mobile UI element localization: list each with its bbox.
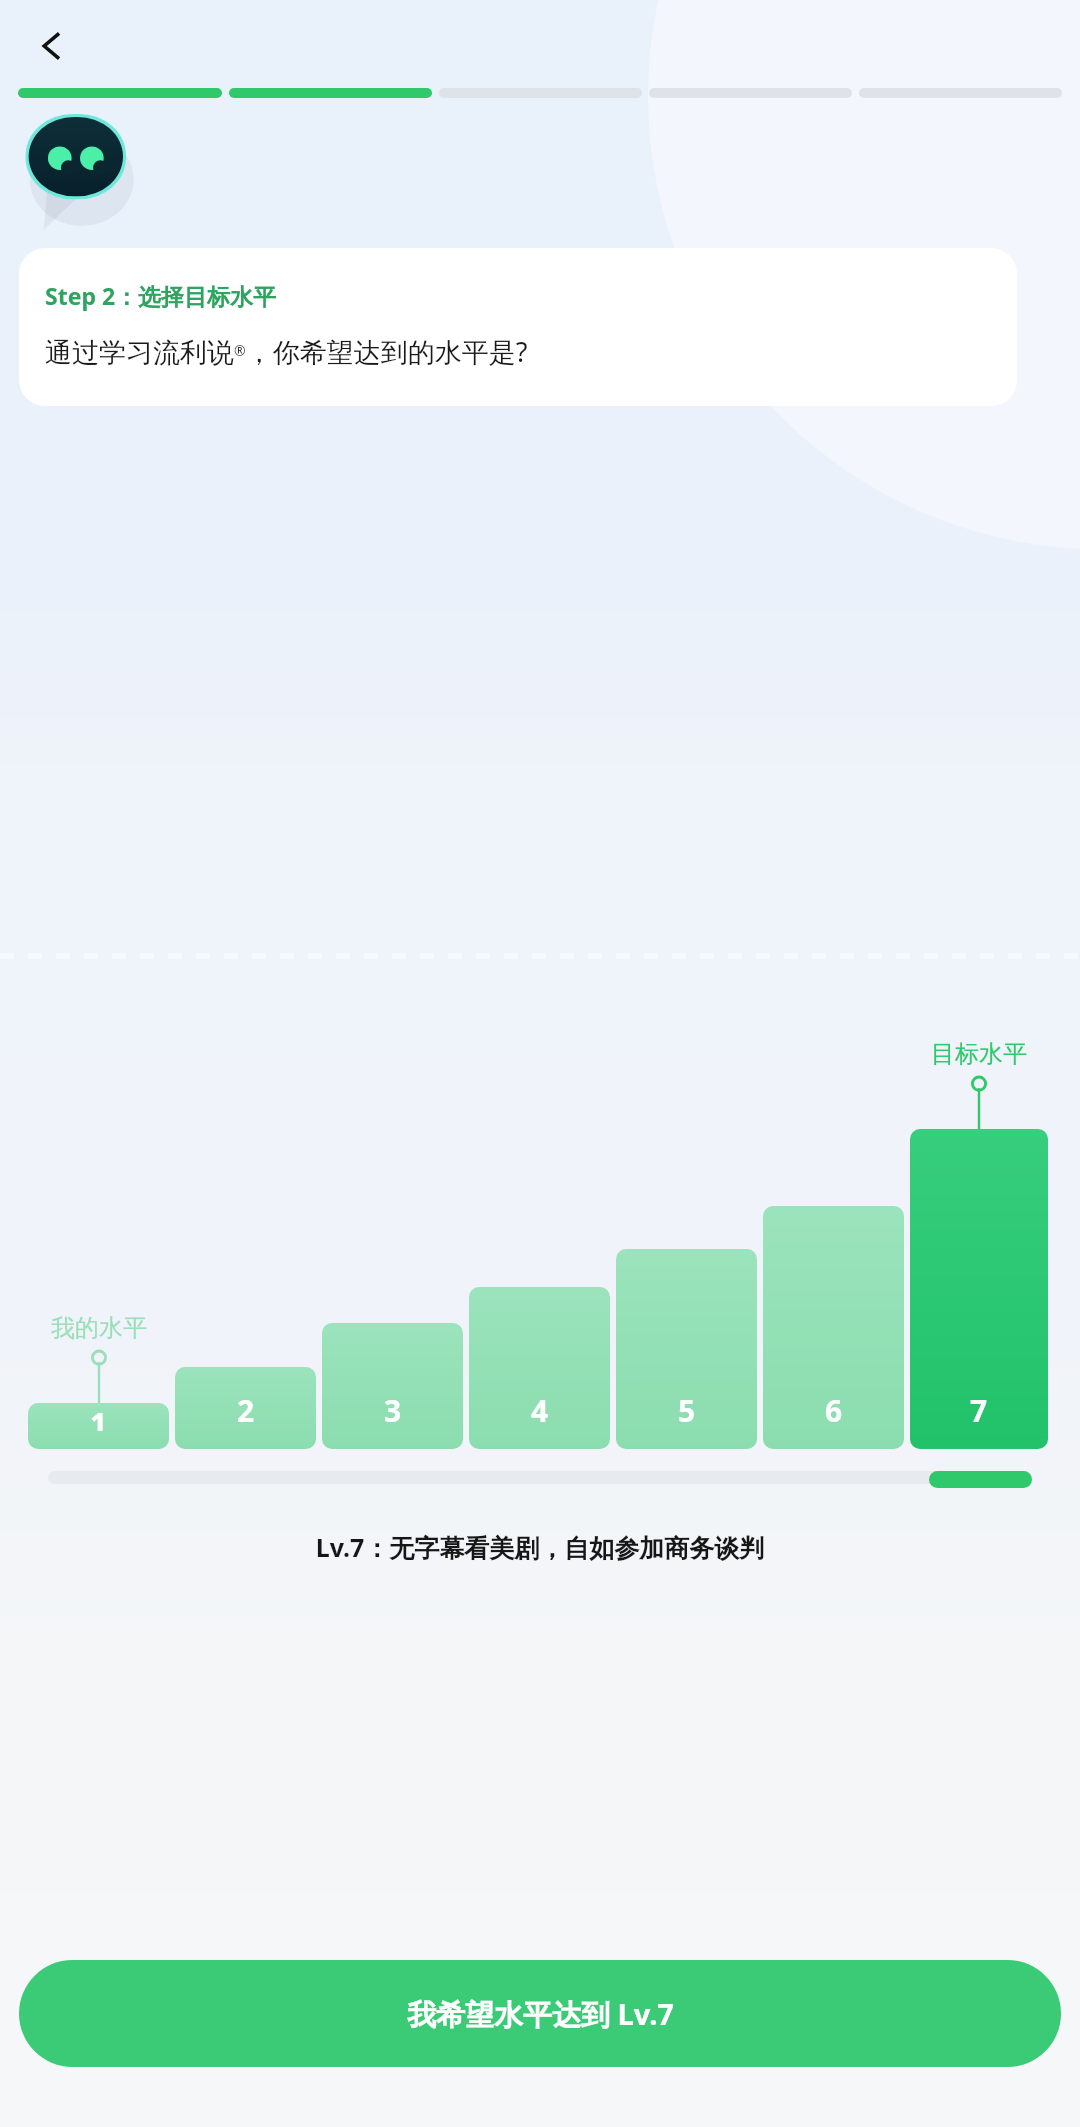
- staticText: 1: [90, 1403, 108, 1431]
- staticText: 通过学习流利说®，你希望达到的水平是?: [45, 333, 528, 370]
- staticText: 我的水平: [51, 1313, 147, 1343]
- button[interactable]: 4: [469, 1287, 610, 1449]
- staticText: 4: [531, 1390, 549, 1431]
- staticText: 我希望水平达到 Lv.7: [407, 1994, 674, 2034]
- button[interactable]: Back: [24, 18, 80, 74]
- button[interactable]: 6: [763, 1206, 904, 1449]
- staticText: 5: [678, 1390, 696, 1431]
- staticText: Step 2：选择目标水平: [45, 280, 277, 311]
- button[interactable]: 7: [910, 1129, 1048, 1449]
- button[interactable]: 3: [322, 1323, 463, 1449]
- staticText: 目标水平: [931, 1039, 1027, 1069]
- button[interactable]: 1: [28, 1403, 169, 1449]
- staticText: 7: [970, 1390, 988, 1431]
- button[interactable]: 我希望水平达到 Lv.7: [19, 1960, 1061, 2067]
- staticText: 2: [237, 1390, 255, 1431]
- staticText: 3: [384, 1390, 402, 1431]
- staticText: Lv.7：无字幕看美剧，自如参加商务谈判: [0, 1530, 1080, 1564]
- staticText: 6: [825, 1390, 843, 1431]
- button[interactable]: Step 2：选择目标水平: [19, 248, 1017, 406]
- button[interactable]: 5: [616, 1249, 757, 1449]
- button[interactable]: 2: [175, 1367, 316, 1449]
